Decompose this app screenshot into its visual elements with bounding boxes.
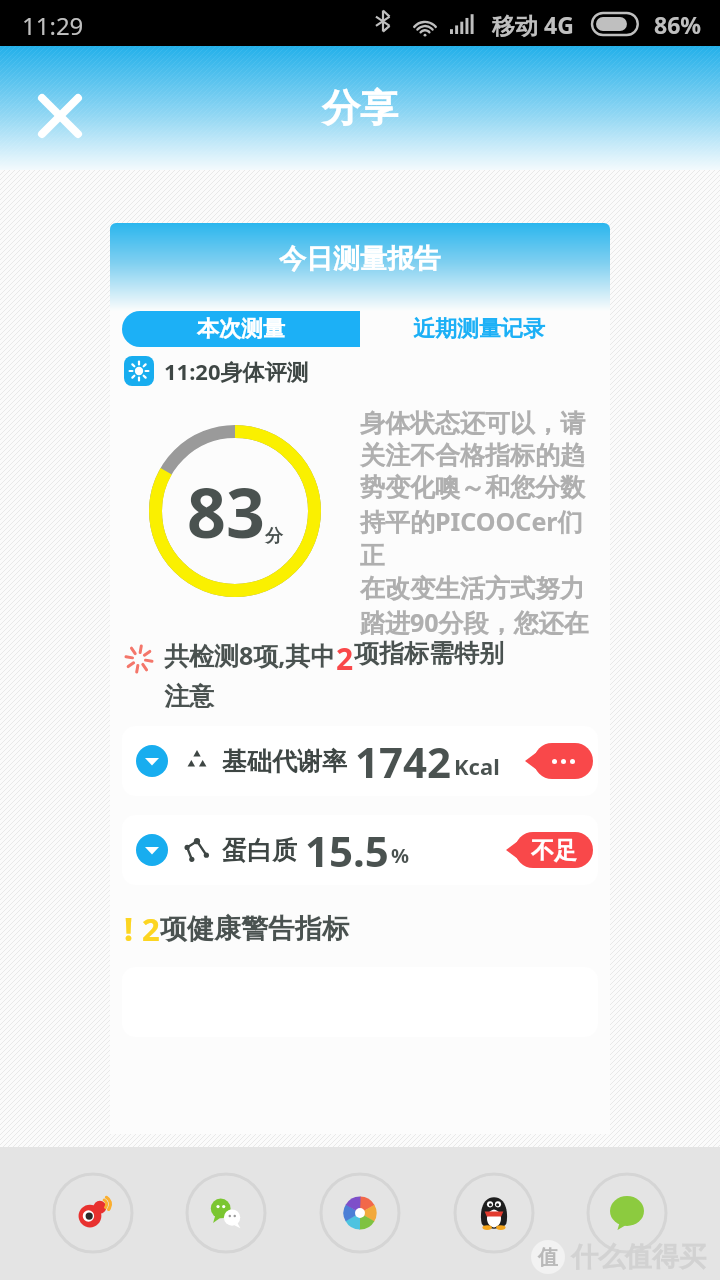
staticText: 83 — [187, 465, 265, 558]
button[interactable]: Weibo — [52, 1172, 134, 1254]
button[interactable]: 蛋白质 — [122, 815, 598, 885]
button[interactable]: 基础代谢率 — [122, 726, 598, 796]
button[interactable]: WeChat — [185, 1172, 267, 1254]
button[interactable]: 近期测量记录 — [360, 311, 598, 347]
button[interactable]: Message — [586, 1172, 668, 1254]
staticText: 本次测量 — [197, 315, 285, 343]
staticText: 蛋白质 — [222, 835, 297, 866]
staticText: 在改变生活方式努力 — [360, 573, 585, 604]
staticText: 11:29 — [22, 9, 84, 42]
staticText: 项指标需特别 — [354, 638, 504, 669]
staticText: 不足 — [531, 836, 577, 865]
staticText: Kcal — [454, 751, 500, 781]
staticText: 什么值得买 — [571, 1240, 706, 1274]
staticText: 势变化噢～和您分数 — [360, 472, 585, 503]
staticText: 1742 — [355, 733, 452, 790]
button[interactable]: Moments — [319, 1172, 401, 1254]
staticText: 86% — [654, 9, 702, 40]
staticText: 项健康警告指标 — [160, 912, 349, 946]
staticText: 11:20身体评测 — [164, 356, 309, 386]
staticText: 移动 4G — [492, 9, 574, 40]
staticText: 踏进90分段，您还在 — [360, 605, 589, 635]
staticText: 关注不合格指标的趋 — [360, 440, 585, 471]
button[interactable]: QQ — [453, 1172, 535, 1254]
staticText: 15.5 — [305, 822, 389, 879]
staticText: 分享 — [322, 84, 398, 132]
staticText: 分 — [265, 525, 283, 548]
staticText: % — [391, 842, 410, 869]
staticText: 值 — [538, 1245, 558, 1270]
button[interactable]: Close — [28, 84, 92, 148]
staticText: 共检测8项,其中 — [164, 638, 336, 672]
staticText: 2 — [336, 638, 354, 679]
button[interactable]: 本次测量 — [122, 311, 360, 347]
staticText: 2 — [142, 908, 160, 950]
staticText: 近期测量记录 — [413, 315, 545, 343]
staticText: 今日测量报告 — [279, 242, 441, 276]
staticText: 基础代谢率 — [222, 746, 347, 777]
staticText: 身体状态还可以，请 — [360, 408, 585, 439]
staticText: 注意 — [164, 681, 214, 712]
staticText: 持平的PICOOCer们正 — [360, 504, 598, 572]
staticText: ! — [124, 907, 134, 951]
